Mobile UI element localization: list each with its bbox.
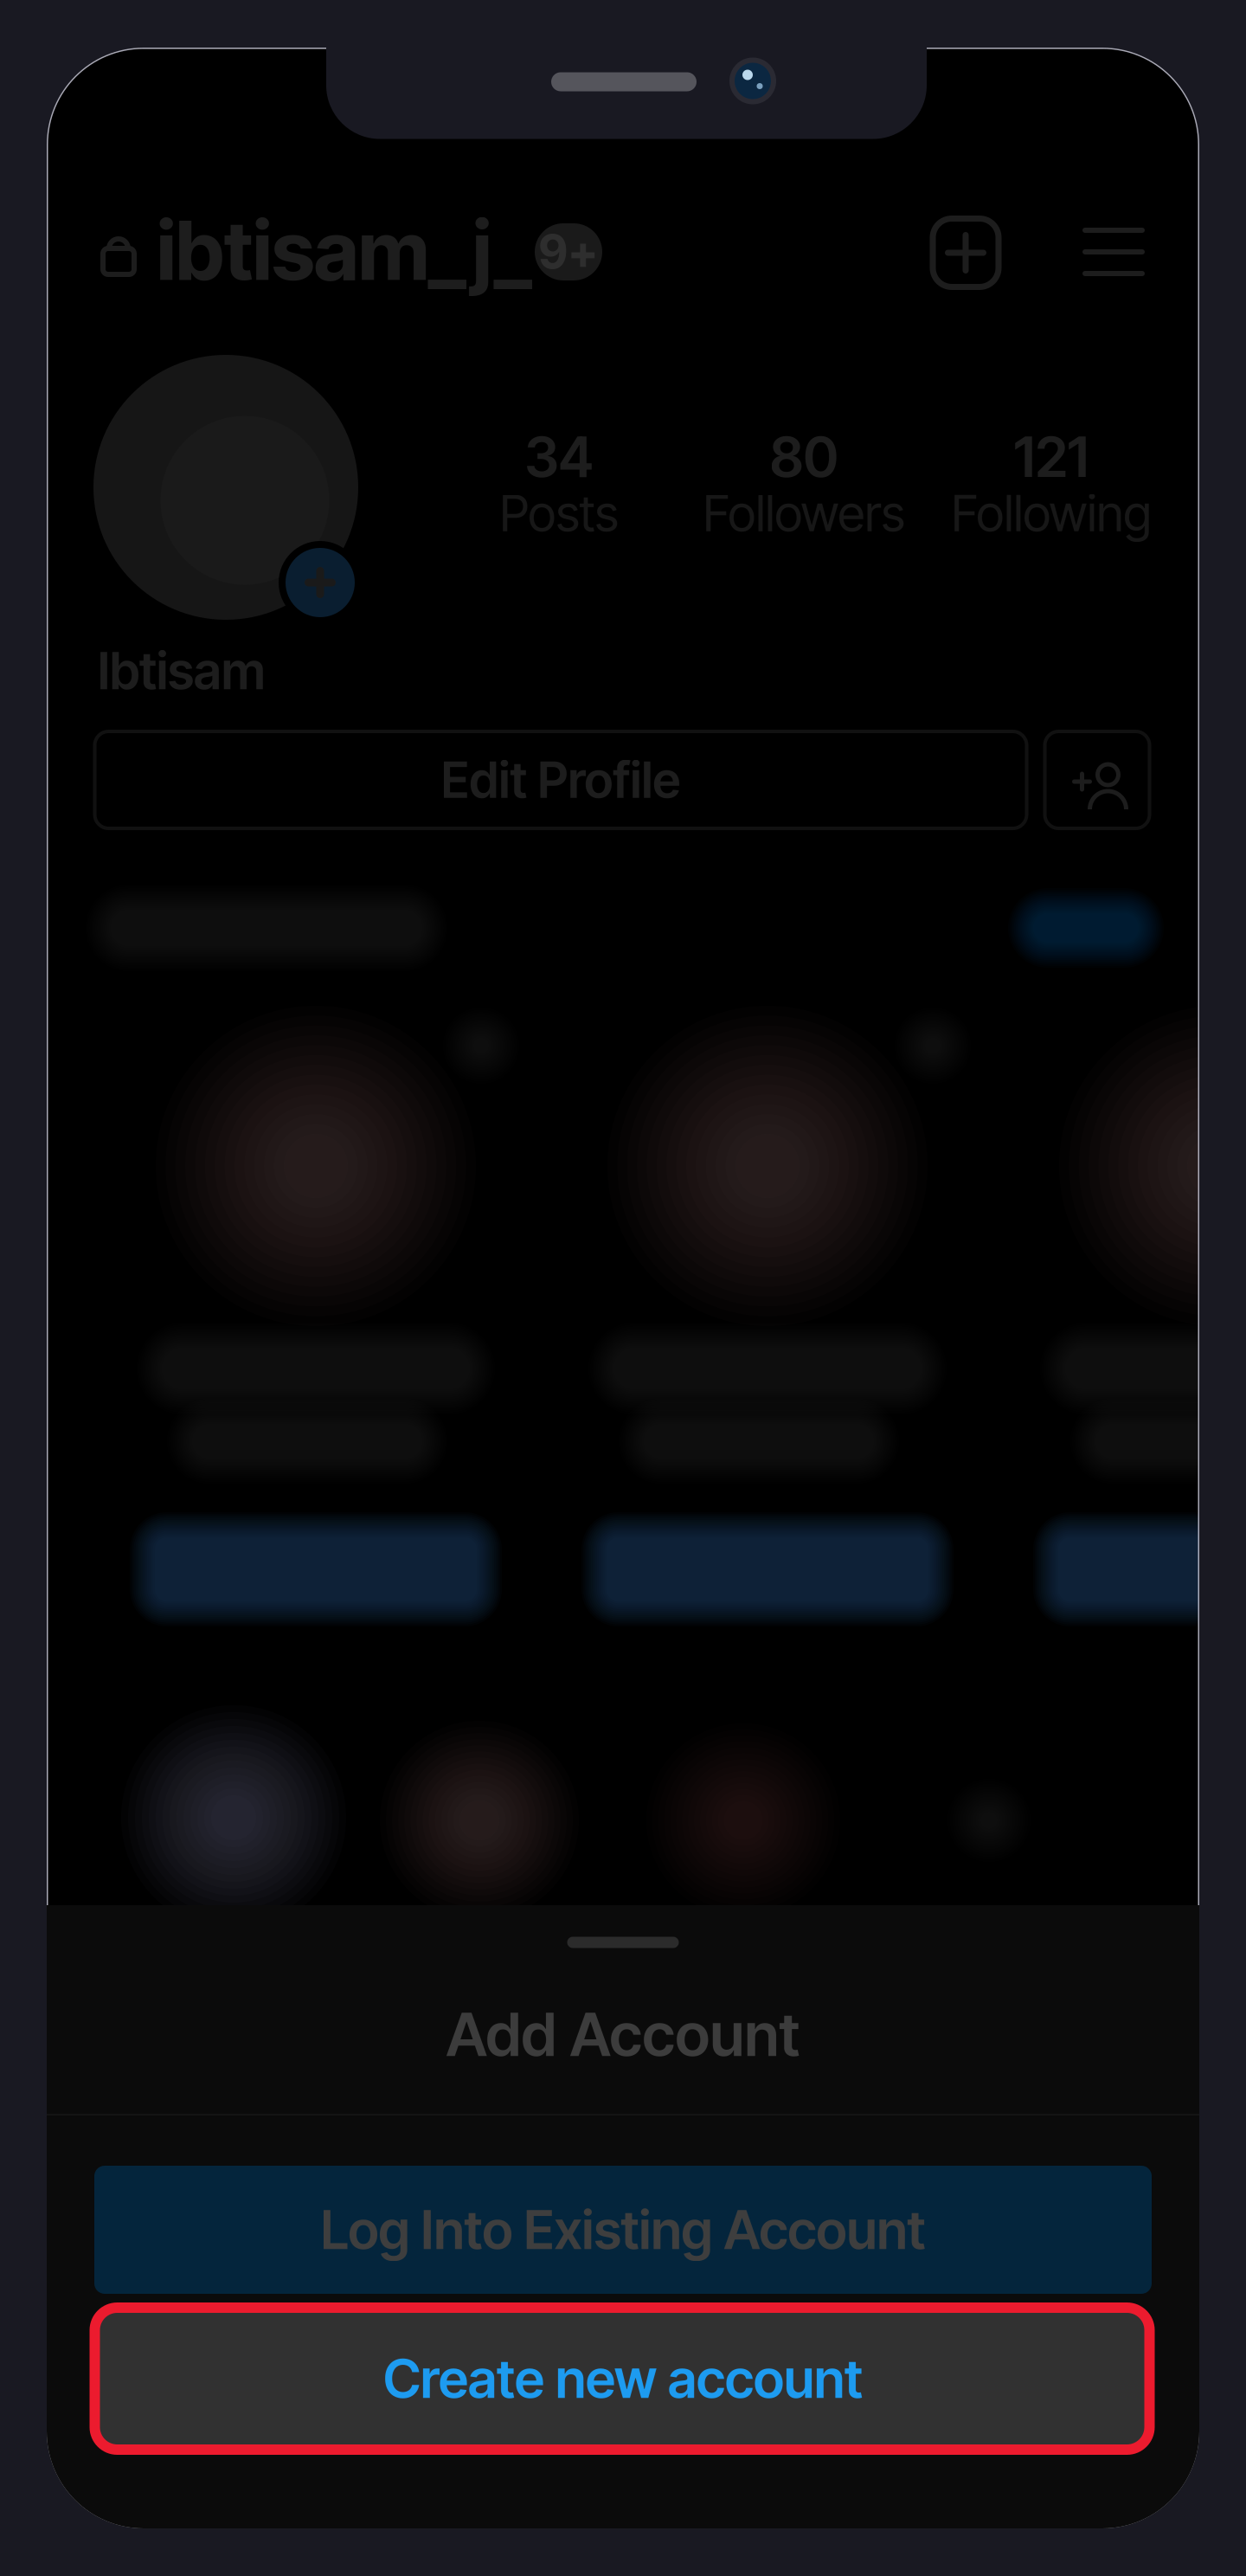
staticText: Edit Profile [441, 750, 681, 810]
staticText: ibtisam_j_ [157, 201, 530, 299]
button[interactable]: ibtisam_j_ [157, 209, 555, 292]
button[interactable]: Edit Profile [95, 731, 1027, 828]
button[interactable]: Menu [1077, 216, 1150, 288]
button[interactable]: 34 [403, 427, 715, 548]
staticText: 9+ [539, 224, 598, 280]
staticText: 80 [770, 424, 838, 491]
staticText: 121 [1014, 424, 1089, 491]
button[interactable]: 121 [896, 427, 1207, 548]
button[interactable]: Create new account [100, 2312, 1146, 2446]
staticText: Posts [500, 483, 618, 543]
button[interactable]: Log Into Existing Account [94, 2166, 1152, 2294]
button[interactable]: 80 [648, 427, 960, 548]
staticText: 34 [525, 424, 593, 491]
button[interactable]: Add to story [279, 541, 362, 624]
button[interactable]: Create [926, 213, 1005, 293]
staticText: Ibtisam [98, 640, 266, 702]
staticText: Add Account [446, 1998, 800, 2070]
button[interactable]: Discover people [1045, 731, 1150, 828]
staticText: Following [951, 483, 1151, 543]
staticText: Create new account [383, 2347, 863, 2411]
staticText: Log Into Existing Account [321, 2198, 925, 2262]
staticText: Followers [703, 483, 905, 543]
